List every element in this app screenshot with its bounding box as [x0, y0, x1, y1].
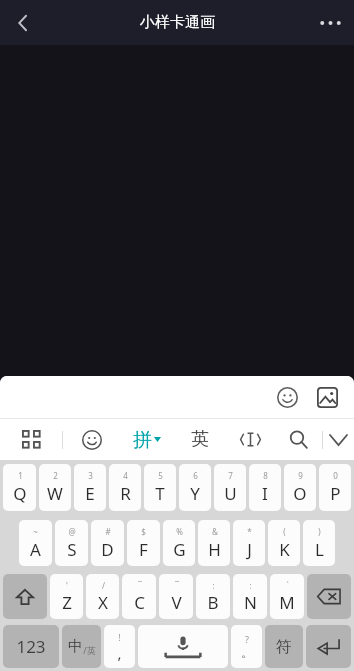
- button[interactable]: 5: [144, 464, 176, 511]
- button[interactable]: 9: [284, 464, 316, 511]
- button[interactable]: :: [233, 574, 267, 619]
- staticText: 符: [276, 637, 292, 657]
- button[interactable]: Back: [0, 0, 46, 45]
- button[interactable]: ?: [231, 625, 262, 668]
- staticText: /英: [83, 644, 96, 656]
- button[interactable]: $: [127, 520, 160, 566]
- staticText: X: [98, 591, 108, 614]
- staticText: *: [247, 526, 252, 537]
- button[interactable]: &: [198, 520, 230, 566]
- button[interactable]: %: [163, 520, 195, 566]
- staticText: F: [139, 538, 148, 561]
- button[interactable]: /: [86, 574, 119, 619]
- button[interactable]: More options: [306, 0, 354, 45]
- staticText: O: [293, 482, 307, 505]
- staticText: 拼: [133, 428, 152, 452]
- staticText: L: [315, 538, 324, 561]
- staticText: ¯: [175, 580, 179, 591]
- staticText: #: [105, 526, 111, 537]
- staticText: R: [120, 482, 131, 505]
- button[interactable]: Keyboard layouts: [0, 419, 62, 460]
- button[interactable]: Insert image: [310, 380, 344, 414]
- button[interactable]: *: [233, 520, 265, 566]
- button[interactable]: 6: [179, 464, 211, 511]
- staticText: ,: [117, 643, 122, 663]
- staticText: K: [279, 538, 290, 561]
- button[interactable]: 123: [3, 625, 59, 668]
- staticText: Q: [13, 482, 27, 505]
- button[interactable]: :: [196, 574, 230, 619]
- staticText: :: [249, 580, 252, 591]
- staticText: 2: [53, 470, 58, 481]
- button[interactable]: 拼: [120, 419, 174, 460]
- staticText: P: [330, 482, 341, 505]
- staticText: V: [171, 591, 182, 614]
- staticText: A: [30, 538, 41, 561]
- button[interactable]: 0: [319, 464, 351, 511]
- staticText: 3: [88, 470, 93, 481]
- staticText: 英: [191, 428, 209, 451]
- button[interactable]: `: [270, 574, 304, 619]
- staticText: 8: [263, 470, 268, 481]
- staticText: U: [224, 482, 237, 505]
- button[interactable]: Shift: [3, 574, 47, 619]
- button[interactable]: 4: [109, 464, 141, 511]
- staticText: (: [283, 526, 286, 537]
- staticText: T: [155, 482, 165, 505]
- staticText: B: [207, 591, 219, 614]
- button[interactable]: !: [104, 625, 135, 668]
- staticText: N: [244, 591, 257, 614]
- button[interactable]: 7: [214, 464, 246, 511]
- staticText: 4: [123, 470, 128, 481]
- staticText: C: [134, 591, 145, 614]
- staticText: 9: [298, 470, 303, 481]
- staticText: 5: [158, 470, 163, 481]
- button[interactable]: Backspace: [307, 574, 351, 619]
- staticText: ~: [33, 526, 38, 537]
- staticText: E: [85, 482, 95, 505]
- button[interactable]: Space: [138, 625, 228, 668]
- button[interactable]: 3: [74, 464, 106, 511]
- staticText: 1: [18, 470, 23, 481]
- staticText: W: [47, 482, 63, 505]
- staticText: ): [318, 526, 321, 537]
- staticText: ¯: [138, 580, 142, 591]
- button[interactable]: 8: [249, 464, 281, 511]
- staticText: &: [212, 526, 218, 537]
- button[interactable]: 中: [62, 625, 101, 668]
- staticText: 6: [193, 470, 198, 481]
- button[interactable]: 1: [3, 464, 36, 511]
- button[interactable]: ': [50, 574, 83, 619]
- button[interactable]: Hide keyboard: [323, 419, 354, 460]
- staticText: $: [141, 526, 146, 537]
- staticText: :: [212, 580, 215, 591]
- button[interactable]: ¯: [122, 574, 156, 619]
- button[interactable]: Emoji panel: [63, 419, 120, 460]
- button[interactable]: (: [268, 520, 300, 566]
- staticText: ': [66, 580, 68, 591]
- staticText: I: [262, 482, 268, 505]
- button[interactable]: ): [303, 520, 335, 566]
- staticText: 7: [228, 470, 233, 481]
- button[interactable]: Emoji: [270, 380, 304, 414]
- staticText: D: [101, 538, 114, 561]
- button[interactable]: ~: [19, 520, 52, 566]
- staticText: ?: [245, 633, 249, 645]
- staticText: 。: [241, 645, 253, 660]
- button[interactable]: Move cursor: [226, 419, 274, 460]
- button[interactable]: 英: [174, 419, 226, 460]
- button[interactable]: Enter: [306, 625, 351, 668]
- staticText: 中: [68, 637, 83, 656]
- staticText: 0: [333, 470, 338, 481]
- button[interactable]: 符: [265, 625, 303, 668]
- button[interactable]: ¯: [159, 574, 193, 619]
- button[interactable]: Search: [274, 419, 322, 460]
- staticText: !: [118, 631, 121, 643]
- button[interactable]: @: [55, 520, 88, 566]
- staticText: J: [247, 538, 252, 561]
- staticText: /: [102, 580, 105, 591]
- button[interactable]: 2: [39, 464, 71, 511]
- staticText: M: [279, 591, 295, 614]
- button[interactable]: #: [91, 520, 124, 566]
- staticText: 小样卡通画: [140, 13, 215, 32]
